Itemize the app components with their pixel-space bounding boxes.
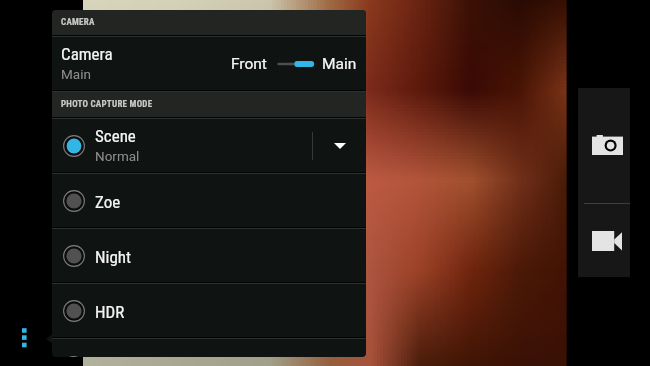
button[interactable] bbox=[52, 339, 366, 357]
button[interactable]: Night bbox=[52, 229, 366, 282]
button[interactable]: Switch camera bbox=[276, 57, 313, 71]
staticText: Camera bbox=[61, 44, 113, 64]
button[interactable]: Zoe bbox=[52, 174, 366, 227]
button[interactable]: Scene bbox=[52, 119, 366, 172]
staticText: Scene bbox=[95, 126, 136, 146]
button[interactable]: Expand scene options bbox=[313, 119, 366, 172]
button[interactable]: Photo mode bbox=[578, 88, 630, 203]
staticText: Night bbox=[95, 247, 132, 267]
staticText: HDR bbox=[95, 302, 125, 322]
staticText: Normal bbox=[95, 148, 140, 164]
staticText: Main bbox=[61, 66, 91, 82]
button[interactable]: More options bbox=[16, 322, 33, 352]
staticText: Front bbox=[231, 55, 267, 73]
button[interactable]: Camera bbox=[52, 37, 366, 90]
staticText: CAMERA bbox=[61, 17, 95, 28]
button[interactable]: Video mode bbox=[578, 204, 630, 277]
staticText: Main bbox=[322, 55, 357, 73]
staticText: PHOTO CAPTURE MODE bbox=[61, 99, 153, 110]
staticText: Zoe bbox=[95, 192, 121, 212]
button[interactable]: HDR bbox=[52, 284, 366, 337]
